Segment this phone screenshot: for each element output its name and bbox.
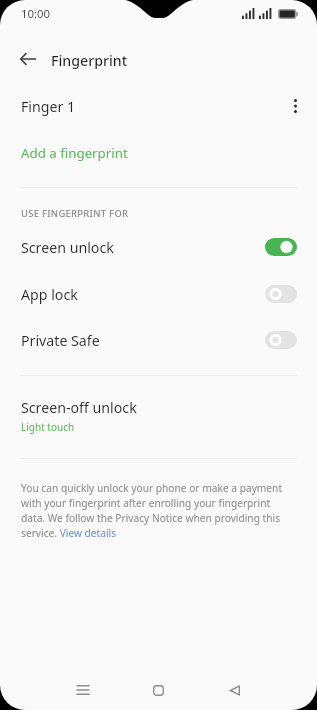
staticText: App lock	[21, 285, 78, 304]
staticText: Screen-off unlock	[21, 398, 137, 417]
staticText: Light touch	[21, 420, 75, 434]
staticText: USE FINGERPRINT FOR	[21, 207, 129, 220]
button[interactable]: Back	[10, 41, 46, 77]
button[interactable]: More options	[280, 91, 310, 121]
button[interactable]: View details	[57, 525, 113, 539]
button[interactable]: Finger 1	[0, 86, 317, 122]
staticText: 10:00	[21, 6, 51, 22]
button[interactable]: Add a fingerprint	[0, 134, 317, 168]
staticText: Fingerprint	[51, 51, 128, 70]
button[interactable]: App lock	[0, 271, 317, 317]
button[interactable]: Back	[214, 670, 254, 710]
button[interactable]: Private Safe	[0, 317, 317, 363]
button[interactable]: Recents	[63, 670, 103, 710]
button[interactable]: Home	[138, 670, 178, 710]
button[interactable]: Screen unlock	[0, 224, 317, 270]
staticText: Private Safe	[21, 331, 100, 350]
staticText: Screen unlock	[21, 238, 114, 257]
staticText: Add a fingerprint	[21, 144, 128, 162]
staticText: You can quickly unlock your phone or mak…	[21, 481, 291, 540]
staticText: Finger 1	[21, 97, 76, 116]
button[interactable]: Screen-off unlock	[0, 388, 317, 440]
